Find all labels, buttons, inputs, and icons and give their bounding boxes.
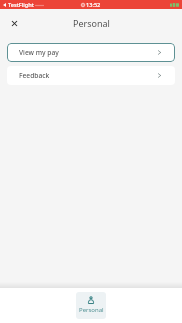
button[interactable]: Close — [3, 12, 25, 34]
staticText: 13:52 — [86, 1, 101, 9]
button[interactable]: Personal — [76, 292, 106, 319]
staticText: Personal — [79, 306, 104, 314]
staticText: View my pay — [19, 48, 59, 57]
button[interactable]: View my pay — [7, 43, 175, 62]
staticText: TestFlight — [8, 1, 34, 9]
button[interactable]: Feedback — [7, 66, 175, 85]
staticText: Feedback — [19, 71, 50, 80]
staticText: Personal — [73, 17, 110, 29]
